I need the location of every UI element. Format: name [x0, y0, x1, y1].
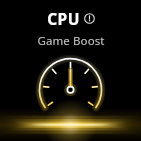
button[interactable]: CPU speed gauge — [0, 51, 141, 136]
staticText: Game Boost — [37, 33, 105, 49]
staticText: CPU — [47, 8, 80, 29]
button[interactable]: CPU — [41, 7, 101, 30]
other: Information — [84, 13, 95, 24]
